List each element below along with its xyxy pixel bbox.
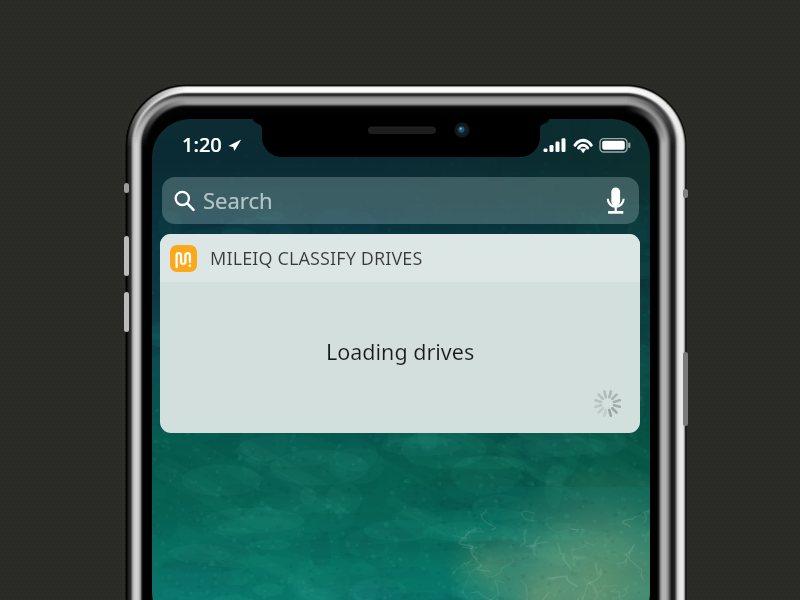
button[interactable]: MILEIQ CLASSIFY DRIVES: [160, 234, 640, 282]
staticText: MILEIQ CLASSIFY DRIVES: [210, 246, 423, 271]
staticText: Search: [203, 185, 273, 215]
staticText: 1:20: [182, 131, 222, 158]
button[interactable]: Search: [162, 177, 639, 224]
staticText: Loading drives: [326, 337, 475, 366]
